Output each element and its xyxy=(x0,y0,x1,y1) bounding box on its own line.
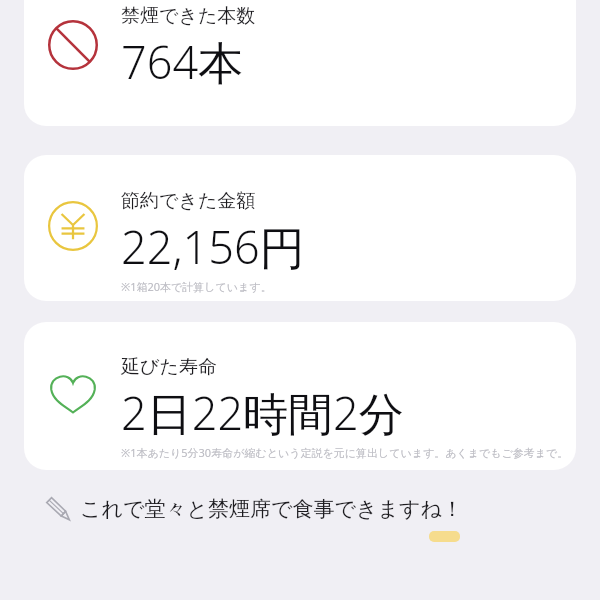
button[interactable]: 禁煙できた本数 xyxy=(24,0,576,126)
staticText: ※1本あたり5分30寿命が縮むという定説を元に算出しています。あくまでもご参考ま… xyxy=(121,445,569,460)
button[interactable]: Edit note xyxy=(44,495,600,522)
staticText: 節約できた金額 xyxy=(121,189,256,213)
button[interactable]: 延びた寿命 xyxy=(24,322,576,470)
staticText: 延びた寿命 xyxy=(121,355,217,379)
other: Edit note xyxy=(44,495,71,522)
staticText: 禁煙できた本数 xyxy=(121,4,256,28)
staticText: ※1箱20本で計算しています。 xyxy=(121,279,272,294)
staticText: これで堂々と禁煙席で食事できますね！ xyxy=(80,496,463,522)
staticText: 22,156円 xyxy=(121,216,305,277)
staticText: 2日22時間2分 xyxy=(121,382,404,443)
staticText: 764本 xyxy=(121,31,244,92)
button[interactable]: 節約できた金額 xyxy=(24,155,576,301)
